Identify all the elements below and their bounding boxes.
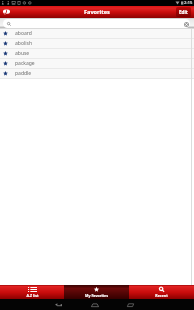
button[interactable]: aboard xyxy=(0,29,194,38)
staticText: abuse xyxy=(15,50,30,57)
staticText: Favorites xyxy=(84,8,110,16)
button[interactable]: Edit xyxy=(176,7,191,17)
button[interactable]: My Favorites xyxy=(64,285,129,299)
button[interactable]: Recent xyxy=(129,285,194,299)
button[interactable]: App logo xyxy=(1,7,11,17)
button[interactable]: Clear search xyxy=(183,21,189,27)
button[interactable]: Back xyxy=(53,299,64,310)
staticText: Edit xyxy=(179,9,188,15)
button[interactable]: abolish xyxy=(0,39,194,48)
staticText: My Favorites xyxy=(85,293,108,298)
staticText: 2:15 xyxy=(184,0,193,6)
staticText: Recent xyxy=(155,293,168,298)
staticText: abolish xyxy=(15,40,32,47)
button[interactable]: Recents xyxy=(125,299,136,310)
button[interactable]: abuse xyxy=(0,49,194,58)
button[interactable]: A-Z list xyxy=(0,285,64,299)
staticText: paddle xyxy=(15,70,32,77)
button[interactable]: Clear search xyxy=(3,19,190,28)
button[interactable]: Home xyxy=(89,299,100,310)
staticText: A-Z list xyxy=(26,293,39,298)
staticText: aboard xyxy=(15,30,32,37)
button[interactable]: package xyxy=(0,59,194,68)
staticText: package xyxy=(15,60,35,67)
button[interactable]: paddle xyxy=(0,69,194,78)
